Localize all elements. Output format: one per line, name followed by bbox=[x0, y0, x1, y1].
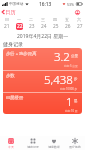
staticText: 健身记录 bbox=[27, 145, 39, 149]
staticText: 目标 10000 步 bbox=[60, 87, 78, 91]
staticText: 健康数据 bbox=[48, 145, 60, 149]
button[interactable]: 日 bbox=[0, 16, 13, 32]
staticText: 已爬楼层 bbox=[6, 95, 24, 100]
staticText: 层 bbox=[74, 99, 78, 103]
staticText: 五 bbox=[65, 17, 69, 22]
staticText: 中国移动 bbox=[9, 2, 24, 7]
staticText: 健身记录 bbox=[3, 41, 23, 47]
button[interactable]: 步行 + 跑步距离 bbox=[3, 48, 82, 70]
staticText: 三 bbox=[41, 17, 45, 22]
staticText: 21 bbox=[4, 23, 10, 30]
staticText: 日历 bbox=[5, 9, 16, 16]
staticText: 22 bbox=[17, 23, 23, 30]
staticText: 一 bbox=[17, 17, 21, 22]
staticText: 53% bbox=[67, 2, 75, 7]
button[interactable]: 健康数据 bbox=[43, 136, 64, 150]
staticText: 日 bbox=[5, 17, 9, 22]
staticText: 步数 bbox=[6, 73, 15, 78]
button[interactable]: Account bbox=[73, 8, 81, 16]
staticText: 24 bbox=[41, 23, 47, 30]
staticText: 四 bbox=[53, 17, 57, 22]
button[interactable]: 健身记录 bbox=[22, 136, 43, 150]
staticText: 1 bbox=[66, 94, 73, 110]
staticText: 3.2 bbox=[54, 49, 70, 65]
button[interactable]: 日历 bbox=[1, 8, 16, 16]
staticText: 5,438 bbox=[44, 72, 73, 88]
staticText: 27 bbox=[77, 23, 83, 30]
staticText: 今天 bbox=[8, 145, 14, 149]
button[interactable]: 一 bbox=[13, 16, 25, 32]
button[interactable]: 已爬楼层 bbox=[3, 93, 82, 114]
staticText: 26 bbox=[65, 23, 71, 30]
staticText: 步 bbox=[74, 77, 78, 81]
button[interactable]: 今天 bbox=[0, 136, 22, 150]
button[interactable]: 三 bbox=[37, 16, 49, 32]
staticText: 目标 10 层 bbox=[65, 109, 78, 113]
staticText: 2019年4月22日 星期一 bbox=[17, 33, 69, 40]
staticText: 公里 bbox=[71, 54, 78, 58]
button[interactable]: 四 bbox=[49, 16, 61, 32]
button[interactable]: 六 bbox=[73, 16, 85, 32]
button[interactable]: 步数 bbox=[3, 71, 82, 92]
staticText: 六 bbox=[77, 17, 81, 22]
staticText: 25 bbox=[53, 23, 59, 30]
staticText: 步行 + 跑步距离 bbox=[6, 50, 37, 56]
staticText: 二 bbox=[29, 17, 33, 22]
button[interactable]: 二 bbox=[25, 16, 37, 32]
staticText: 目标 5 公里 bbox=[64, 64, 78, 68]
staticText: 医疗急救 bbox=[69, 145, 81, 149]
button[interactable]: 五 bbox=[61, 16, 73, 32]
button[interactable]: 医疗急救 bbox=[64, 136, 85, 150]
staticText: 16:13 bbox=[39, 1, 52, 8]
staticText: 23 bbox=[29, 23, 35, 30]
